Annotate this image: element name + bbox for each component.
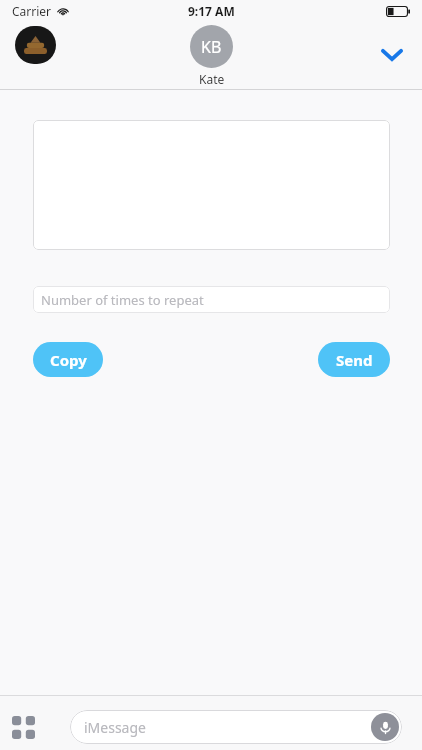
button[interactable]: Message text bbox=[33, 120, 390, 250]
button[interactable]: App icon bbox=[15, 26, 56, 64]
button[interactable]: Copy bbox=[33, 342, 103, 377]
button[interactable]: Record audio bbox=[371, 713, 399, 741]
staticText: KB bbox=[201, 36, 222, 58]
staticText: 9:17 AM bbox=[188, 3, 235, 19]
button[interactable]: Send bbox=[318, 342, 390, 377]
button[interactable]: Number of times to repeat bbox=[33, 286, 390, 313]
staticText: iMessage bbox=[84, 718, 146, 737]
staticText: Send bbox=[336, 350, 373, 370]
staticText: Carrier bbox=[12, 3, 52, 19]
staticText: Copy bbox=[50, 350, 87, 370]
button[interactable]: iMessage bbox=[70, 710, 402, 744]
button[interactable]: Apps bbox=[0, 704, 46, 750]
button[interactable]: Collapse bbox=[370, 32, 414, 76]
staticText: Number of times to repeat bbox=[41, 291, 204, 309]
staticText: Kate bbox=[199, 71, 225, 87]
button[interactable]: KB bbox=[190, 25, 233, 87]
